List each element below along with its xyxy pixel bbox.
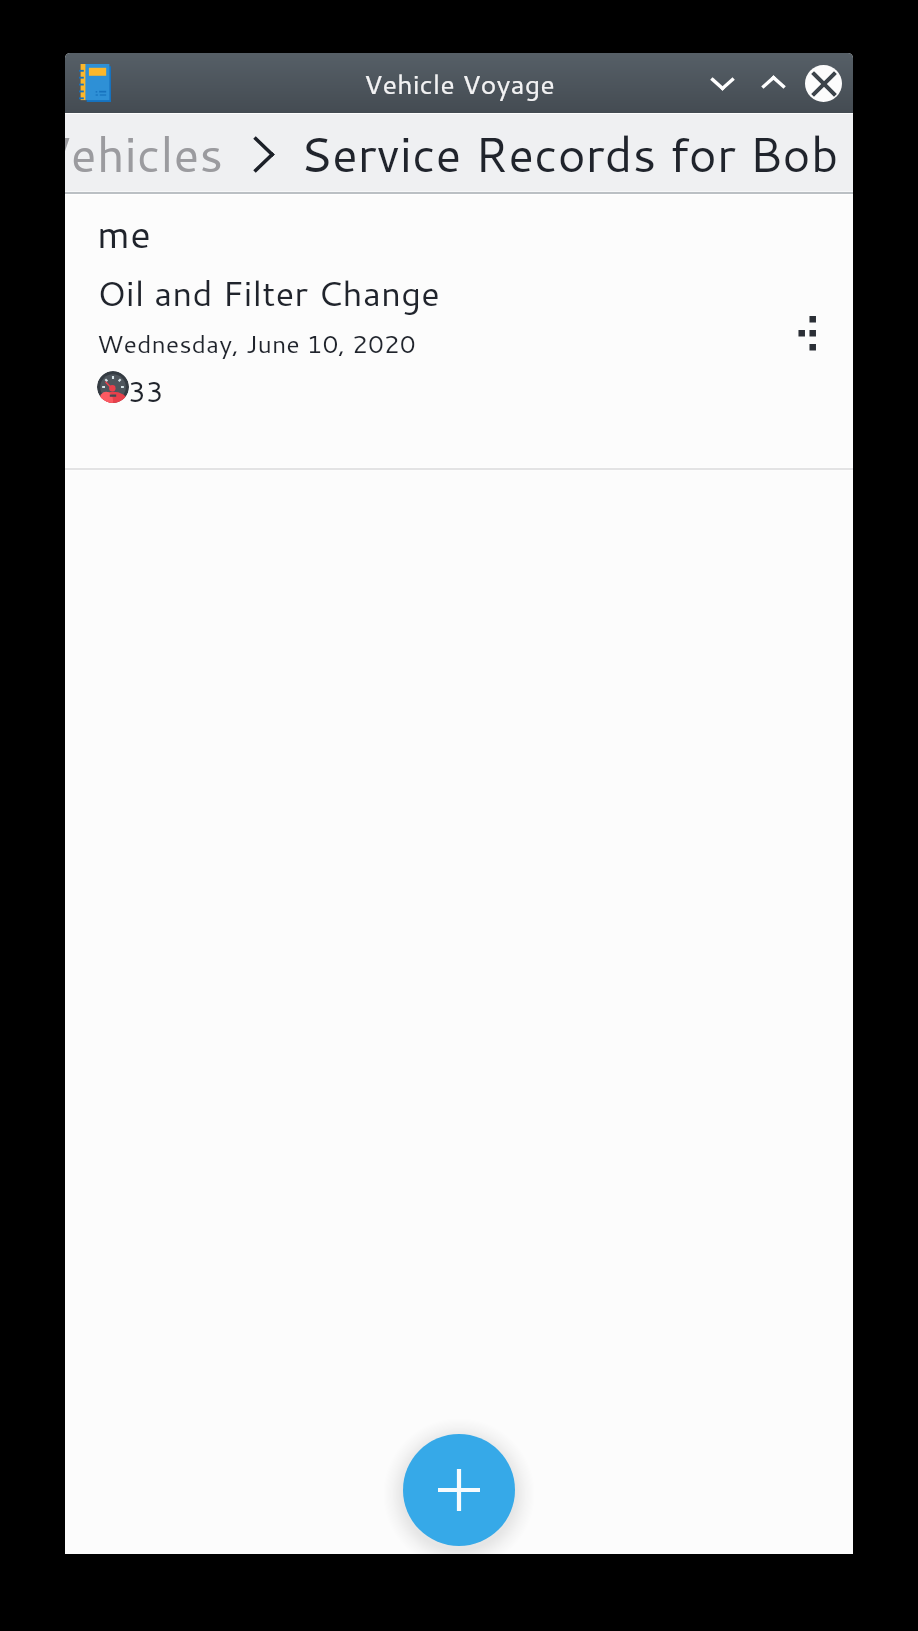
staticText: Vehicles [65, 119, 224, 187]
staticText: 33 [128, 371, 164, 411]
button[interactable]: More options [779, 306, 833, 360]
staticText: Oil and Filter Change [97, 268, 440, 318]
staticText: me [97, 205, 152, 260]
staticText: Service Records for Bob [300, 119, 839, 187]
button[interactable]: Add service record [403, 1434, 515, 1546]
button[interactable]: Minimize [698, 60, 746, 108]
staticText: Wednesday, June 10, 2020 [97, 326, 416, 361]
button[interactable]: me [65, 195, 853, 471]
button[interactable]: Close [799, 59, 847, 107]
staticText: Vehicle Voyage [364, 64, 555, 102]
button[interactable]: Maximize [749, 58, 797, 106]
